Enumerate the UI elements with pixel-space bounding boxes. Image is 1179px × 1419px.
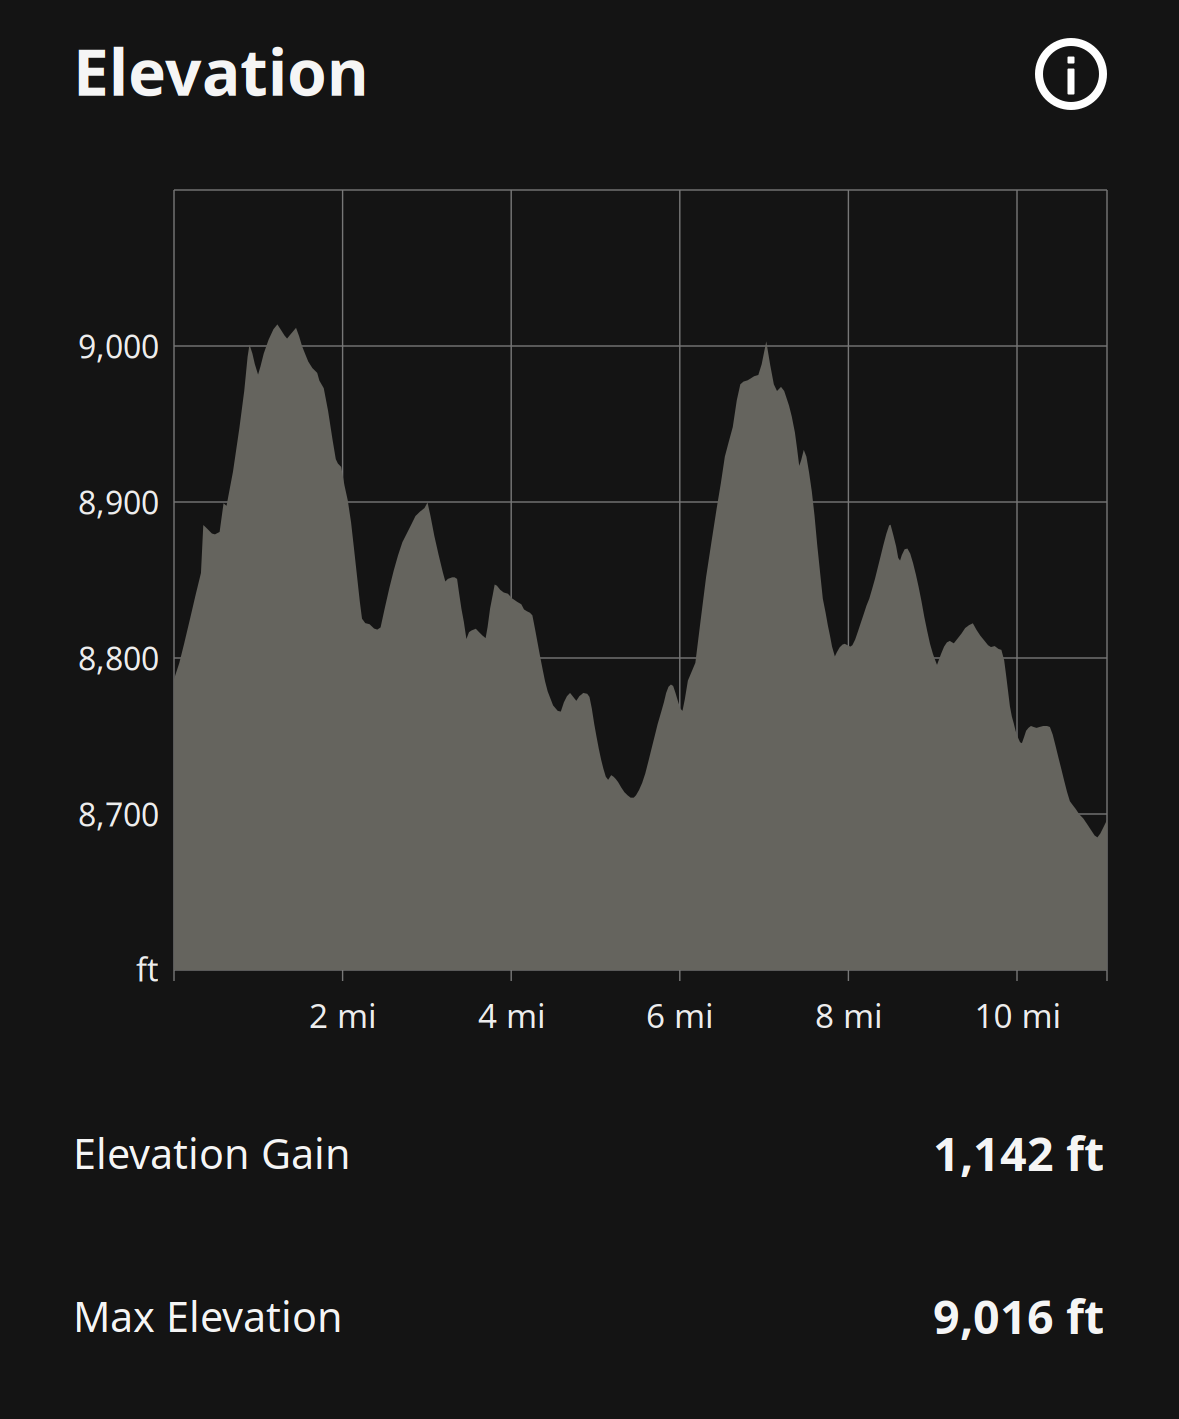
staticText: 8 mi — [815, 993, 883, 1037]
staticText: ft — [136, 948, 159, 990]
staticText: Max Elevation — [73, 1289, 343, 1343]
staticText: Elevation Gain — [73, 1126, 351, 1180]
staticText: 4 mi — [478, 993, 546, 1037]
staticText: 9,000 — [78, 325, 159, 367]
button[interactable]: Info — [1029, 32, 1113, 116]
staticText: Elevation — [73, 28, 369, 113]
staticText: 8,800 — [78, 637, 159, 679]
button[interactable]: Max Elevation — [73, 1286, 1104, 1346]
button[interactable]: Elevation Gain — [73, 1123, 1104, 1183]
staticText: 8,900 — [78, 481, 159, 523]
staticText: 10 mi — [974, 993, 1061, 1037]
staticText: 1,142 ft — [933, 1122, 1104, 1184]
staticText: 8,700 — [78, 793, 159, 835]
staticText: 2 mi — [309, 993, 377, 1037]
staticText: 9,016 ft — [933, 1285, 1104, 1347]
staticText: 6 mi — [646, 993, 714, 1037]
